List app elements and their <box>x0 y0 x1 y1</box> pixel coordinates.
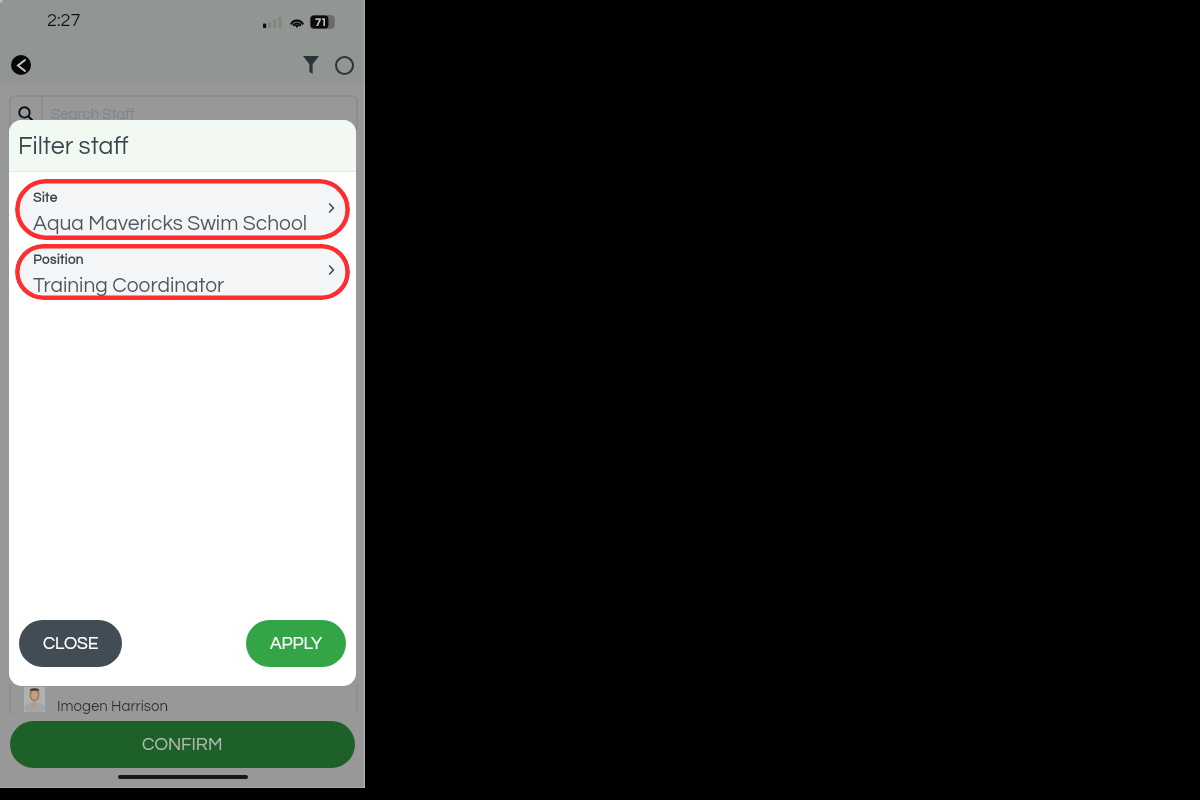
staticText: Filter staff <box>18 133 129 159</box>
staticText: Imogen Harrison <box>57 699 168 714</box>
staticText: Training Coordinator <box>33 275 225 297</box>
button[interactable]: Search Staff <box>10 96 357 132</box>
staticText: Site <box>33 191 58 205</box>
staticText: Search Staff <box>51 107 135 122</box>
button[interactable]: CLOSE <box>19 620 122 667</box>
staticText: APPLY <box>270 635 323 653</box>
button[interactable]: Back <box>11 55 31 75</box>
button[interactable]: Site <box>15 179 350 240</box>
staticText: CONFIRM <box>142 735 223 754</box>
button[interactable]: CONFIRM <box>10 721 355 768</box>
button[interactable]: APPLY <box>246 620 346 667</box>
staticText: CLOSE <box>43 635 99 653</box>
button[interactable]: Position <box>15 244 350 300</box>
staticText: Position <box>33 253 84 267</box>
button[interactable]: Profile <box>329 50 359 80</box>
staticText: 71 <box>315 17 327 28</box>
button[interactable]: Filter <box>296 50 326 80</box>
staticText: Aqua Mavericks Swim School <box>33 213 308 235</box>
staticText: 2:27 <box>47 11 81 30</box>
